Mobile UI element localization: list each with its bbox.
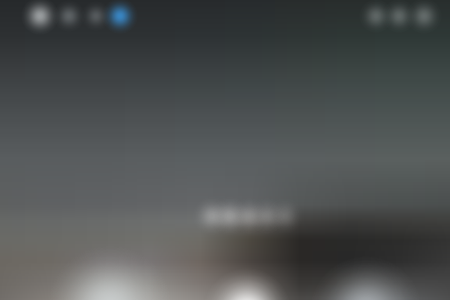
button[interactable]: Hold for video [200, 206, 300, 228]
button[interactable]: Gallery [72, 274, 148, 298]
button[interactable]: Switch camera [326, 274, 406, 298]
button[interactable]: Notifications [30, 8, 51, 29]
button[interactable]: Shutter [213, 274, 281, 298]
button[interactable]: Status icons [360, 8, 442, 26]
